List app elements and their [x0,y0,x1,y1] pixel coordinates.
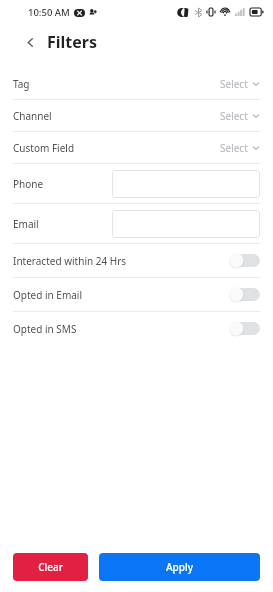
button[interactable]: Email input [112,210,260,238]
staticText: Select [220,77,248,91]
button[interactable]: Custom Field [0,132,273,163]
button[interactable]: Clear [13,553,88,581]
staticText: Email [13,217,39,231]
button[interactable]: Phone input [112,170,260,198]
staticText: Custom Field [13,141,75,155]
staticText: Tag [13,77,30,91]
button[interactable]: Apply [99,553,260,581]
button[interactable]: Interacted within 24 Hrs [0,244,273,277]
button[interactable]: Opted in SMS [0,312,273,345]
other: Interacted within 24 Hrs toggle [229,253,260,268]
staticText: Channel [13,109,52,123]
staticText: Filters [47,31,98,53]
staticText: 10:50 AM [28,6,70,19]
staticText: Opted in SMS [13,322,77,336]
button[interactable]: Opted in Email [0,278,273,311]
staticText: Clear [38,560,63,574]
staticText: Opted in Email [13,288,82,302]
staticText: Apply [166,560,193,574]
other: Opted in Email toggle [229,287,260,302]
button[interactable]: Tag [0,68,273,99]
staticText: Select [220,141,248,155]
button[interactable]: Back [19,31,41,53]
other: Opted in SMS toggle [229,321,260,336]
staticText: Select [220,109,248,123]
button[interactable]: Channel [0,100,273,131]
staticText: Phone [13,177,44,191]
staticText: Interacted within 24 Hrs [13,254,127,268]
